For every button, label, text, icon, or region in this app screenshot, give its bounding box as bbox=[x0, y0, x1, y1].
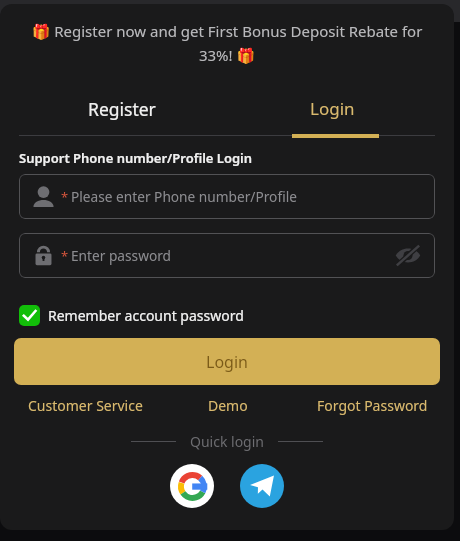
button[interactable]: Customer Service bbox=[28, 396, 143, 415]
staticText: Enter password bbox=[71, 246, 171, 265]
staticText: Register bbox=[88, 97, 156, 121]
staticText: Remember account password bbox=[48, 306, 244, 325]
staticText: Please enter Phone number/Profile bbox=[71, 187, 297, 206]
staticText: Login bbox=[206, 351, 248, 373]
staticText: Forgot Password bbox=[317, 396, 428, 415]
staticText: Customer Service bbox=[28, 396, 143, 415]
button[interactable]: Sign in with Telegram bbox=[240, 464, 284, 508]
button[interactable]: Show password bbox=[395, 245, 421, 266]
button[interactable]: * bbox=[19, 233, 435, 278]
button[interactable]: Forgot Password bbox=[317, 396, 428, 415]
staticText: 🎁 Register now and get First Bonus Depos… bbox=[26, 21, 428, 65]
staticText: Demo bbox=[208, 396, 248, 415]
staticText: * bbox=[61, 188, 69, 206]
button[interactable]: Login bbox=[14, 338, 440, 385]
button[interactable]: * bbox=[19, 174, 435, 219]
staticText: Quick login bbox=[190, 432, 264, 451]
button[interactable]: Remember account password bbox=[19, 301, 244, 329]
button[interactable]: Demo bbox=[208, 396, 248, 415]
button[interactable]: Login bbox=[229, 97, 436, 143]
staticText: Login bbox=[310, 97, 355, 120]
staticText: Support Phone number/Profile Login bbox=[19, 149, 253, 167]
button[interactable]: Register bbox=[18, 97, 225, 143]
staticText: * bbox=[61, 247, 69, 265]
button[interactable]: Sign in with Google bbox=[170, 464, 214, 508]
